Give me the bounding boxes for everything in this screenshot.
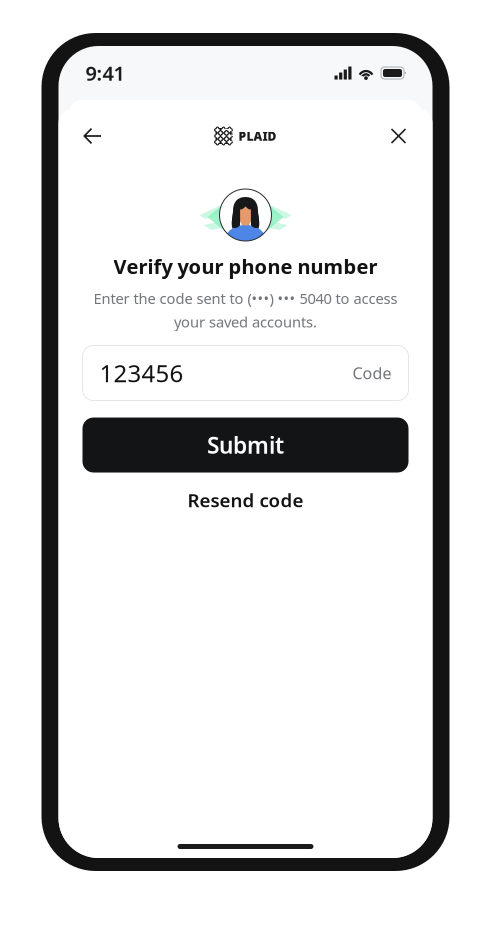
button[interactable]: Close: [376, 114, 420, 158]
staticText: 9:41: [85, 60, 124, 86]
button[interactable]: Submit: [58, 417, 432, 472]
staticText: Code: [352, 362, 391, 384]
staticText: Enter the code sent to (•••) ••• 5040 to…: [93, 289, 397, 308]
staticText: your saved accounts.: [174, 312, 317, 331]
staticText: Resend code: [187, 487, 303, 512]
button[interactable]: Resend code: [178, 478, 312, 521]
staticText: 123456: [99, 357, 183, 389]
staticText: Verify your phone number: [113, 253, 377, 280]
staticText: Submit: [207, 430, 284, 460]
button[interactable]: Back: [70, 114, 114, 158]
staticText: PLAID: [238, 128, 276, 144]
